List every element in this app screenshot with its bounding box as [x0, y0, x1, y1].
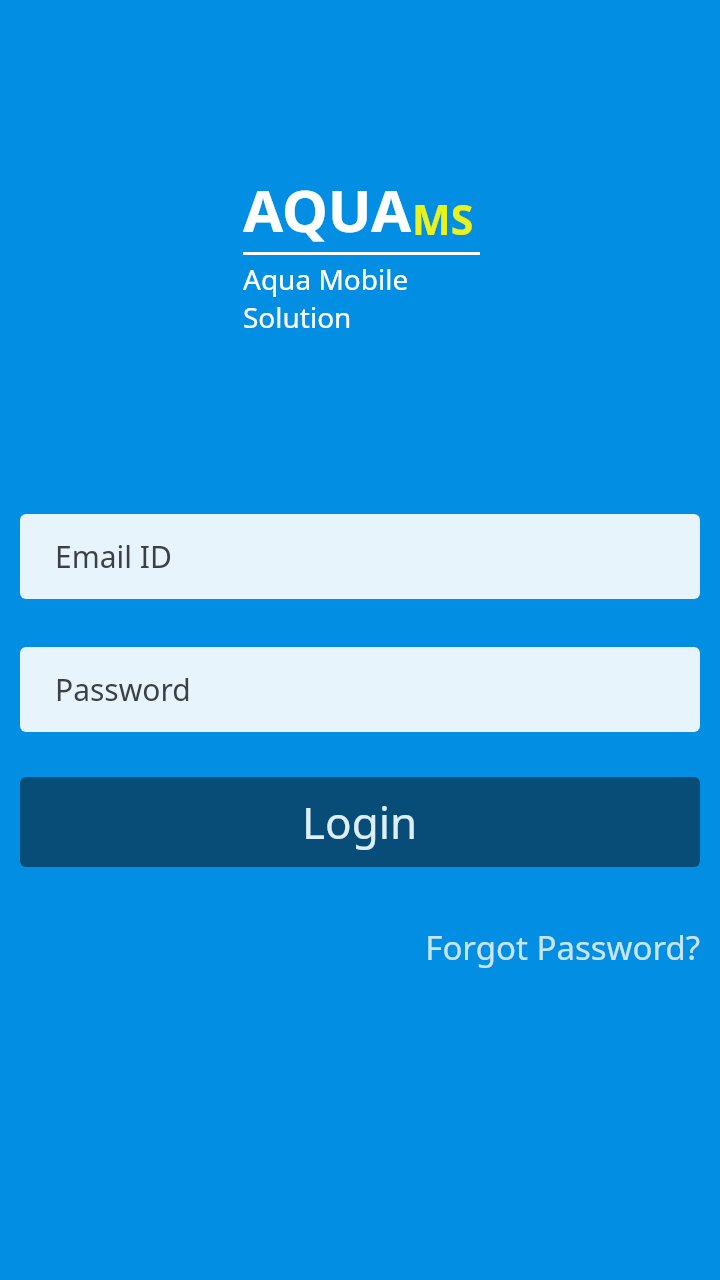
button[interactable]: Forgot Password? [425, 919, 700, 976]
staticText: MS [412, 191, 474, 247]
staticText: Password [55, 669, 191, 710]
button[interactable]: Login [20, 777, 700, 867]
staticText: Login [302, 792, 418, 852]
staticText: Forgot Password? [425, 925, 700, 970]
staticText: Email ID [55, 536, 172, 577]
button[interactable]: Email ID [20, 514, 700, 599]
button[interactable]: Password [20, 647, 700, 732]
staticText: AQUA [243, 170, 412, 249]
staticText: Aqua Mobile Solution [243, 260, 480, 336]
